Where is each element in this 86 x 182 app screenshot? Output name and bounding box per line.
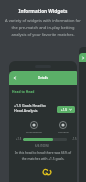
staticText: 6/6 (100%) (9, 144, 76, 148)
staticText: +1.5 (16, 137, 22, 141)
staticText: Information Widgets (0, 8, 86, 14)
button[interactable]: Previous widget (9, 71, 20, 85)
staticText: +1.5 (61, 108, 67, 112)
staticText: +1.5 Goals Head to Head Analysis (14, 103, 46, 113)
staticText: Southampton (26, 130, 43, 133)
button[interactable]: +1.5 (57, 106, 75, 113)
staticText: In this head to head there was 66% of th… (9, 151, 77, 161)
staticText: -1.5 (72, 137, 77, 141)
staticText: Liverpool (58, 130, 69, 133)
button[interactable]: Next widget (79, 47, 86, 182)
staticText: Head to Head (12, 89, 35, 93)
staticText: A variety of widgets with information fo… (4, 18, 82, 37)
staticText: Details (38, 76, 48, 80)
